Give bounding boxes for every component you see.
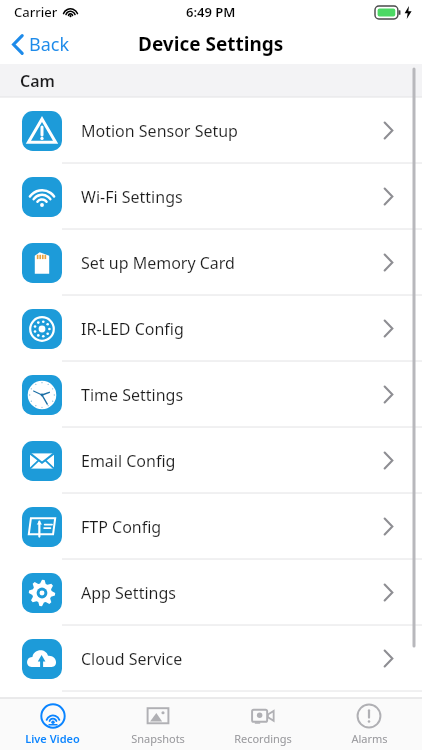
- button[interactable]: Snapshots: [105, 699, 210, 750]
- button[interactable]: Back: [0, 28, 82, 61]
- staticText: Cam: [20, 70, 55, 92]
- staticText: Live Video: [25, 731, 80, 746]
- button[interactable]: Email Config: [0, 428, 422, 494]
- button[interactable]: Live Video: [0, 699, 105, 750]
- button[interactable]: Time Settings: [0, 362, 422, 428]
- button[interactable]: App Settings: [0, 560, 422, 626]
- staticText: Email Config: [81, 450, 383, 472]
- button[interactable]: Recordings: [210, 699, 316, 750]
- staticText: Recordings: [234, 731, 292, 746]
- staticText: 6:49 PM: [186, 3, 236, 21]
- button[interactable]: Wi-Fi Settings: [0, 164, 422, 230]
- staticText: Motion Sensor Setup: [81, 120, 383, 142]
- staticText: Time Settings: [81, 384, 383, 406]
- staticText: IR-LED Config: [81, 318, 383, 340]
- button[interactable]: Alarms: [316, 699, 422, 750]
- staticText: Alarms: [351, 731, 388, 746]
- button[interactable]: IR-LED Config: [0, 296, 422, 362]
- button[interactable]: Set up Memory Card: [0, 230, 422, 296]
- staticText: FTP Config: [81, 516, 383, 538]
- staticText: Wi-Fi Settings: [81, 186, 383, 208]
- staticText: Device Settings: [138, 31, 284, 57]
- staticText: Cloud Service: [81, 648, 383, 670]
- staticText: Snapshots: [131, 731, 185, 746]
- button[interactable]: Motion Sensor Setup: [0, 98, 422, 164]
- staticText: App Settings: [81, 582, 383, 604]
- button[interactable]: Cloud Service: [0, 626, 422, 692]
- staticText: Carrier: [14, 3, 58, 21]
- staticText: Back: [29, 32, 70, 57]
- staticText: Set up Memory Card: [81, 252, 383, 274]
- button[interactable]: FTP Config: [0, 494, 422, 560]
